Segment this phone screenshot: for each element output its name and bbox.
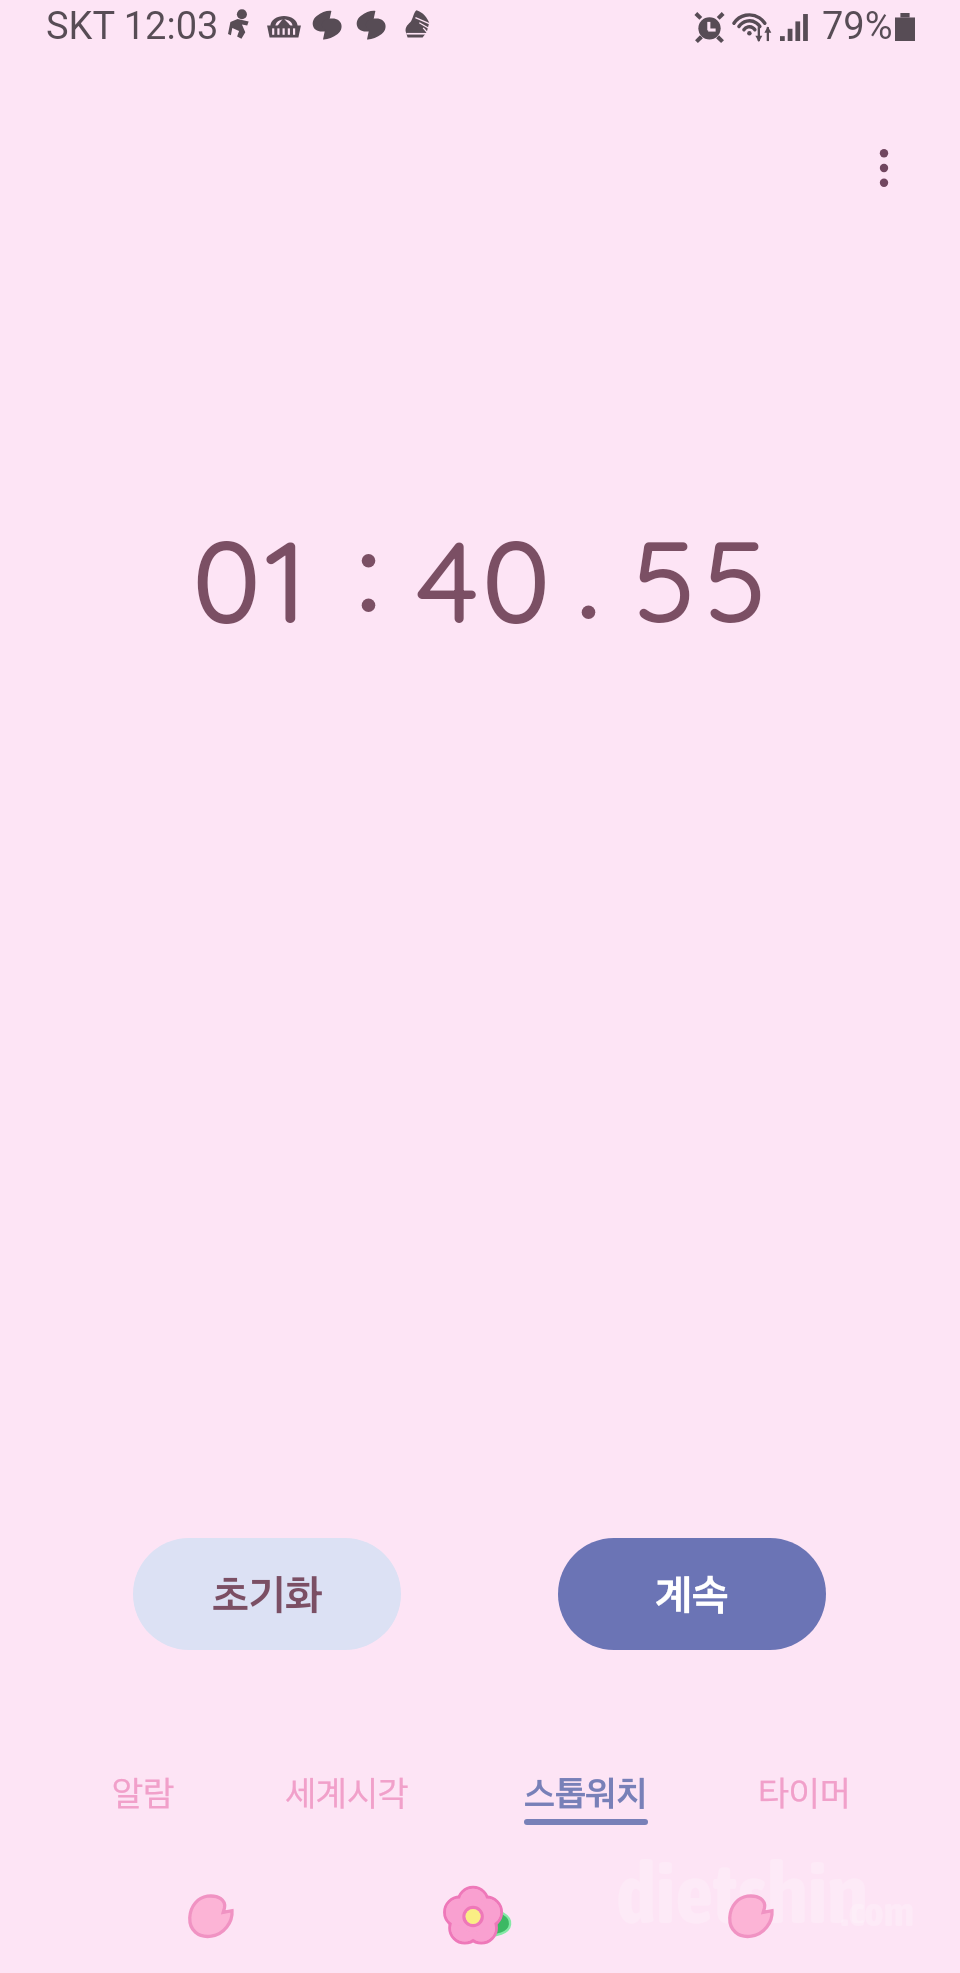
- button[interactable]: Back: [695, 1874, 805, 1958]
- button[interactable]: 타이머: [679, 1772, 929, 1842]
- staticText: SKT 12:03: [46, 4, 219, 49]
- staticText: dietshin: [616, 1845, 868, 1941]
- staticText: 스톱워치: [524, 1772, 648, 1815]
- staticText: 계속: [655, 1569, 729, 1620]
- staticText: 40: [416, 508, 554, 652]
- button[interactable]: 세계시각: [222, 1772, 472, 1842]
- staticText: .com: [841, 1887, 914, 1935]
- staticText: 01: [192, 508, 310, 652]
- button[interactable]: 스톱워치: [461, 1772, 711, 1842]
- button[interactable]: 초기화: [133, 1538, 401, 1650]
- button[interactable]: 계속: [558, 1538, 826, 1650]
- staticText: 타이머: [758, 1772, 851, 1815]
- staticText: 55: [632, 508, 774, 652]
- button[interactable]: Recents: [155, 1874, 265, 1958]
- button[interactable]: Home: [425, 1874, 535, 1958]
- button[interactable]: More options: [836, 120, 932, 216]
- staticText: 초기화: [212, 1569, 323, 1620]
- staticText: 79%: [822, 4, 893, 49]
- button[interactable]: 알람: [18, 1772, 268, 1842]
- staticText: 알람: [112, 1772, 174, 1815]
- staticText: 세계시각: [285, 1772, 409, 1815]
